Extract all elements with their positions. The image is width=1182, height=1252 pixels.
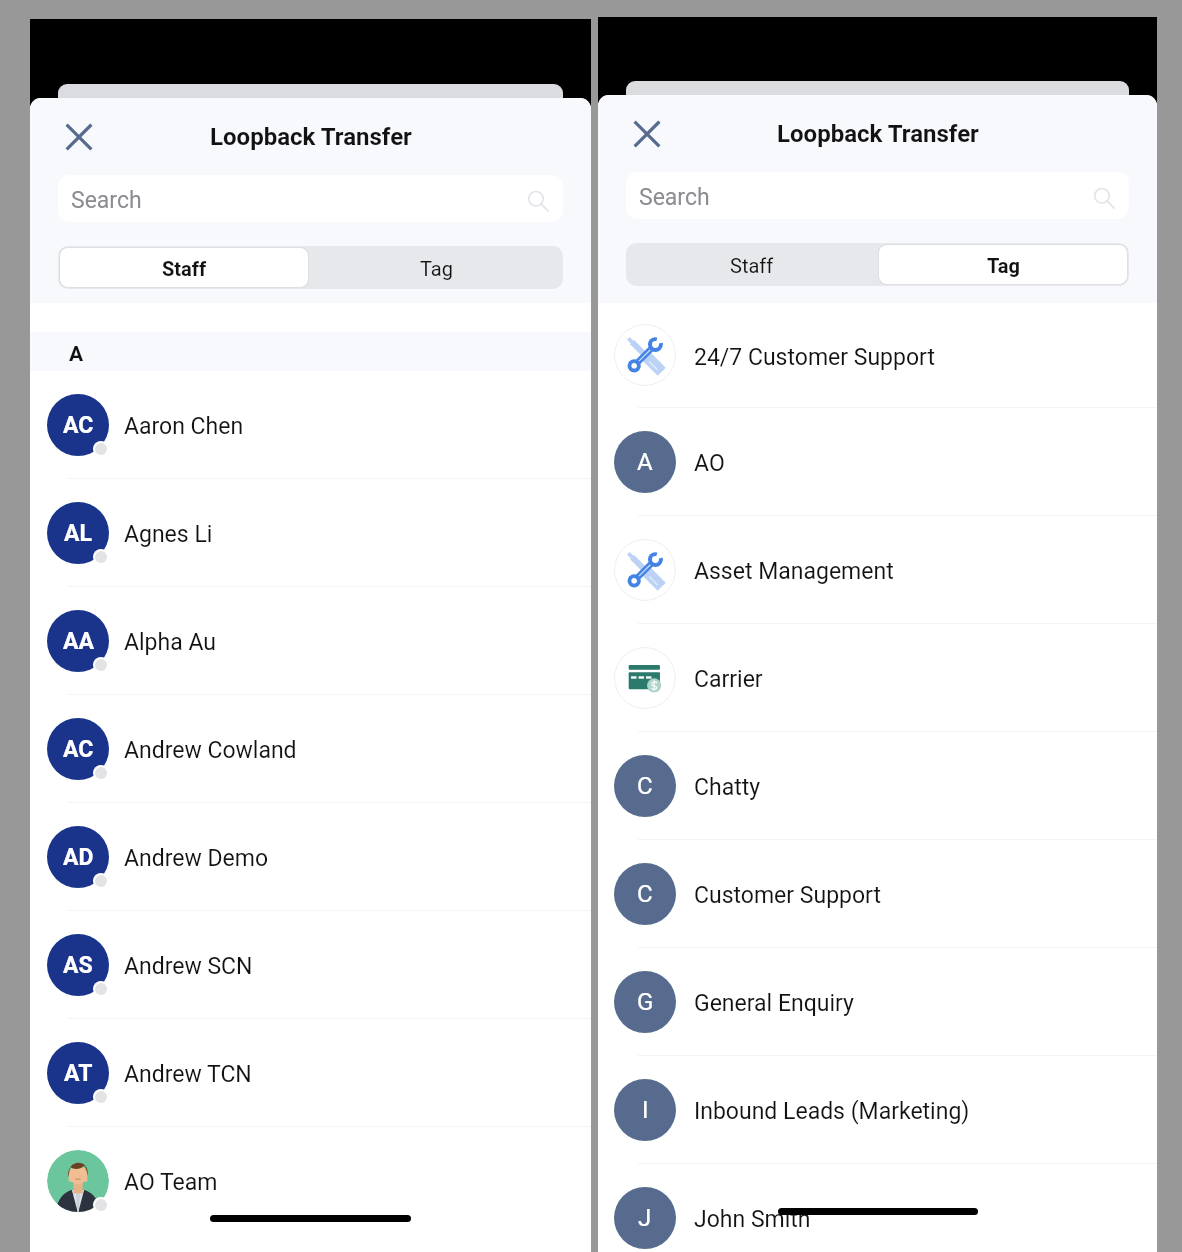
button[interactable]: G <box>598 948 1157 1056</box>
staticText: Customer Support <box>694 882 881 909</box>
button[interactable]: Carrier <box>598 624 1157 732</box>
staticText: Search <box>71 187 142 214</box>
staticText: J <box>638 1204 652 1232</box>
button[interactable]: C <box>598 840 1157 948</box>
button[interactable]: Close <box>622 109 672 159</box>
staticText: General Enquiry <box>694 990 854 1017</box>
staticText: C <box>637 772 653 800</box>
staticText: Loopback Transfer <box>210 123 412 151</box>
staticText: Asset Management <box>694 558 894 585</box>
staticText: Loopback Transfer <box>777 120 979 148</box>
staticText: 24/7 Customer Support <box>694 344 935 371</box>
staticText: Andrew SCN <box>124 953 253 980</box>
staticText: Staff <box>162 257 207 280</box>
button[interactable]: Tag <box>310 246 563 289</box>
button[interactable]: AL <box>30 479 591 587</box>
button[interactable]: Asset Management <box>598 516 1157 624</box>
staticText: Chatty <box>694 774 761 801</box>
staticText: A <box>69 342 84 367</box>
staticText: Andrew Cowland <box>124 737 297 764</box>
staticText: AT <box>64 1060 93 1087</box>
staticText: AS <box>63 952 93 979</box>
button[interactable]: C <box>598 732 1157 840</box>
staticText: I <box>642 1096 649 1124</box>
staticText: C <box>637 880 653 908</box>
staticText: AD <box>63 844 94 871</box>
staticText: AA <box>63 628 94 655</box>
staticText: AL <box>64 520 92 547</box>
button[interactable]: 24/7 Customer Support <box>598 303 1157 408</box>
button[interactable]: I <box>598 1056 1157 1164</box>
staticText: Alpha Au <box>124 629 216 656</box>
staticText: A <box>637 448 653 476</box>
button[interactable]: A <box>598 408 1157 516</box>
button[interactable]: Close <box>54 112 104 162</box>
staticText: G <box>637 988 654 1016</box>
staticText: Andrew Demo <box>124 845 269 872</box>
staticText: Tag <box>987 254 1020 277</box>
staticText: Tag <box>420 257 453 280</box>
staticText: AO Team <box>124 1169 218 1196</box>
button[interactable]: AO Team <box>47 1127 591 1234</box>
staticText: Search <box>639 184 710 211</box>
staticText: Carrier <box>694 666 763 693</box>
button[interactable]: AC <box>30 695 591 803</box>
staticText: Staff <box>730 254 774 277</box>
staticText: AC <box>63 412 94 439</box>
staticText: Agnes Li <box>124 521 213 548</box>
staticText: AO <box>694 450 725 477</box>
button[interactable]: Tag <box>879 245 1127 284</box>
staticText: Andrew TCN <box>124 1061 252 1088</box>
staticText: AC <box>63 736 94 763</box>
staticText: John Smith <box>694 1206 811 1233</box>
button[interactable]: AD <box>30 803 591 911</box>
button[interactable]: AC <box>30 371 591 479</box>
button[interactable]: AS <box>30 911 591 1019</box>
button[interactable]: Staff <box>626 243 877 286</box>
button[interactable]: Staff <box>60 248 308 287</box>
button[interactable]: Search <box>626 172 1129 219</box>
button[interactable]: Search <box>58 175 563 222</box>
staticText: Aaron Chen <box>124 413 244 440</box>
button[interactable]: J <box>598 1164 1157 1252</box>
staticText: Inbound Leads (Marketing) <box>694 1098 970 1125</box>
button[interactable]: AA <box>30 587 591 695</box>
button[interactable]: AT <box>30 1019 591 1127</box>
